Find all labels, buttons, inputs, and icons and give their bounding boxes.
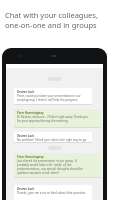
staticText: Thanks, give me a sec to think about tha…	[17, 191, 87, 195]
staticText: projectgroup. I think it will help the p…	[17, 98, 79, 102]
staticText: No problem! I think your idea is the rig…	[17, 138, 87, 142]
staticText: Hi Desiree, ofcourse... I'll do it right…	[17, 115, 88, 119]
staticText: Peter Hemmingway	[17, 155, 44, 159]
button[interactable]: Peter Hemmingway	[14, 153, 101, 177]
staticText: Desiree Luck	[17, 187, 35, 191]
staticText: one-on-one and in groups	[5, 20, 97, 30]
staticText: Peter, could you share your presentation…	[17, 94, 81, 98]
staticText: question we want to ask them?	[17, 171, 60, 175]
staticText: projectmembers, any special thoughts abo…	[17, 167, 83, 171]
staticText: Desiree Luck	[17, 90, 35, 94]
staticText: for your approval during the meeting.	[17, 119, 69, 123]
staticText: Just shared the presentation in our grou…	[17, 159, 77, 163]
staticText: Chat with your colleagues,	[5, 10, 98, 20]
staticText: Desiree Luck	[17, 134, 35, 138]
button[interactable]: Desiree Luck	[14, 132, 92, 142]
staticText: probably would help to fix 'notify' all …	[17, 163, 72, 167]
button[interactable]: Peter Hemmingway	[14, 109, 101, 127]
button[interactable]: Desiree Luck	[14, 88, 92, 104]
staticText: Peter Hemmingway	[17, 111, 44, 115]
button[interactable]: Desiree Luck	[14, 185, 92, 200]
